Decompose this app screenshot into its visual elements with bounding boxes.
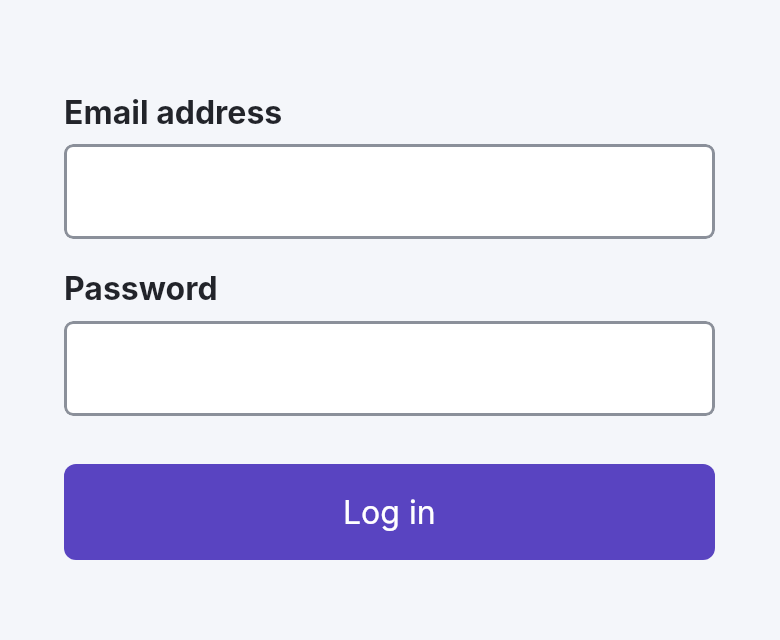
staticText: Email address: [64, 93, 283, 132]
button[interactable]: Log in: [64, 464, 715, 560]
staticText: Password: [64, 269, 218, 308]
button[interactable]: [64, 144, 715, 239]
button[interactable]: [64, 321, 715, 416]
staticText: Log in: [343, 493, 436, 532]
